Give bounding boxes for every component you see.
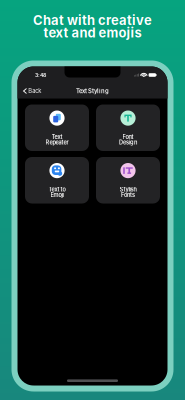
button[interactable]: Text to — [25, 157, 89, 203]
staticText: Stylish — [119, 186, 136, 193]
staticText: text and emojis — [43, 25, 141, 40]
staticText: Repeater — [45, 139, 68, 146]
staticText: Emoji — [50, 191, 63, 198]
staticText: Text — [51, 134, 62, 140]
staticText: Design — [119, 139, 137, 146]
staticText: Font — [122, 134, 133, 140]
button[interactable]: Font — [96, 104, 160, 151]
staticText: Back — [28, 87, 41, 94]
staticText: Chat with creative — [33, 12, 152, 28]
staticText: Fonts — [121, 191, 135, 198]
button[interactable]: Text — [25, 104, 89, 151]
staticText: 3:48 — [35, 72, 46, 78]
staticText: Text to — [48, 186, 65, 193]
button[interactable]: Back — [17, 85, 41, 97]
staticText: Text Styling — [76, 87, 109, 95]
button[interactable]: Stylish — [96, 157, 160, 203]
